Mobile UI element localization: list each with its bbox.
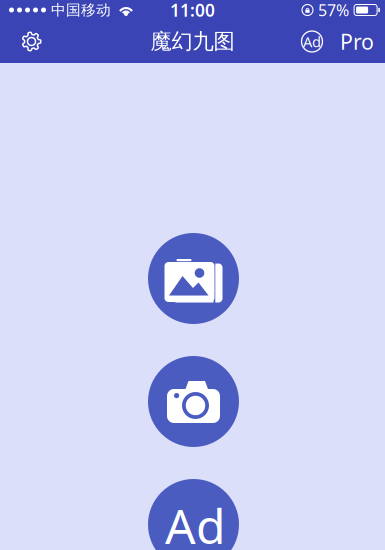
button[interactable]: Remove ads xyxy=(281,23,331,59)
staticText: 魔幻九图 xyxy=(150,28,234,55)
staticText: Ad xyxy=(165,494,226,550)
button[interactable]: Pro xyxy=(331,17,385,66)
button[interactable]: Choose photos xyxy=(148,233,239,324)
staticText: 11:00 xyxy=(170,0,215,21)
staticText: 57% xyxy=(318,0,349,21)
button[interactable]: Watch ad xyxy=(148,479,239,550)
button[interactable]: Take a photo xyxy=(148,356,239,447)
staticText: 中国移动 xyxy=(51,1,111,19)
staticText: Pro xyxy=(340,27,374,56)
button[interactable]: Settings xyxy=(0,21,54,62)
staticText: Ad xyxy=(303,32,321,51)
